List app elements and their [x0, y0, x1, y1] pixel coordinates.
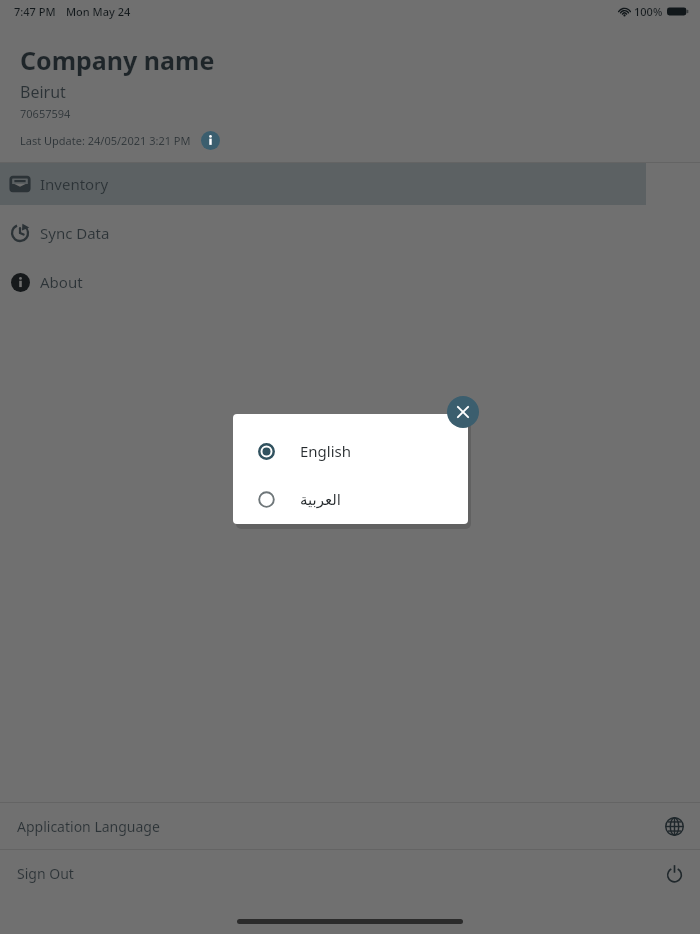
button[interactable]: Inventory: [0, 163, 646, 205]
staticText: Inventory: [40, 174, 109, 194]
button[interactable]: About: [0, 261, 700, 303]
staticText: Mon May 24: [66, 4, 131, 19]
staticText: Company name: [20, 43, 215, 77]
other: Application language: [665, 817, 684, 836]
staticText: 70657594: [20, 106, 71, 121]
staticText: Sign Out: [17, 864, 74, 883]
button[interactable]: Sign Out: [0, 850, 700, 896]
staticText: العربية: [300, 491, 341, 508]
staticText: Beirut: [20, 81, 66, 103]
staticText: English: [300, 441, 352, 461]
button[interactable]: Close: [447, 396, 479, 428]
staticText: Sync Data: [40, 223, 110, 243]
staticText: Application Language: [17, 817, 160, 836]
button[interactable]: Application Language: [0, 803, 700, 849]
staticText: 7:47 PM: [14, 4, 56, 19]
button[interactable]: العربية: [233, 483, 468, 515]
staticText: Last Update: 24/05/2021 3:21 PM: [20, 133, 191, 148]
staticText: About: [40, 272, 83, 292]
other: Sign out: [665, 864, 684, 883]
staticText: 100%: [634, 4, 663, 19]
button[interactable]: English: [233, 435, 468, 467]
button[interactable]: Information: [201, 131, 220, 150]
button[interactable]: Sync Data: [0, 212, 700, 254]
